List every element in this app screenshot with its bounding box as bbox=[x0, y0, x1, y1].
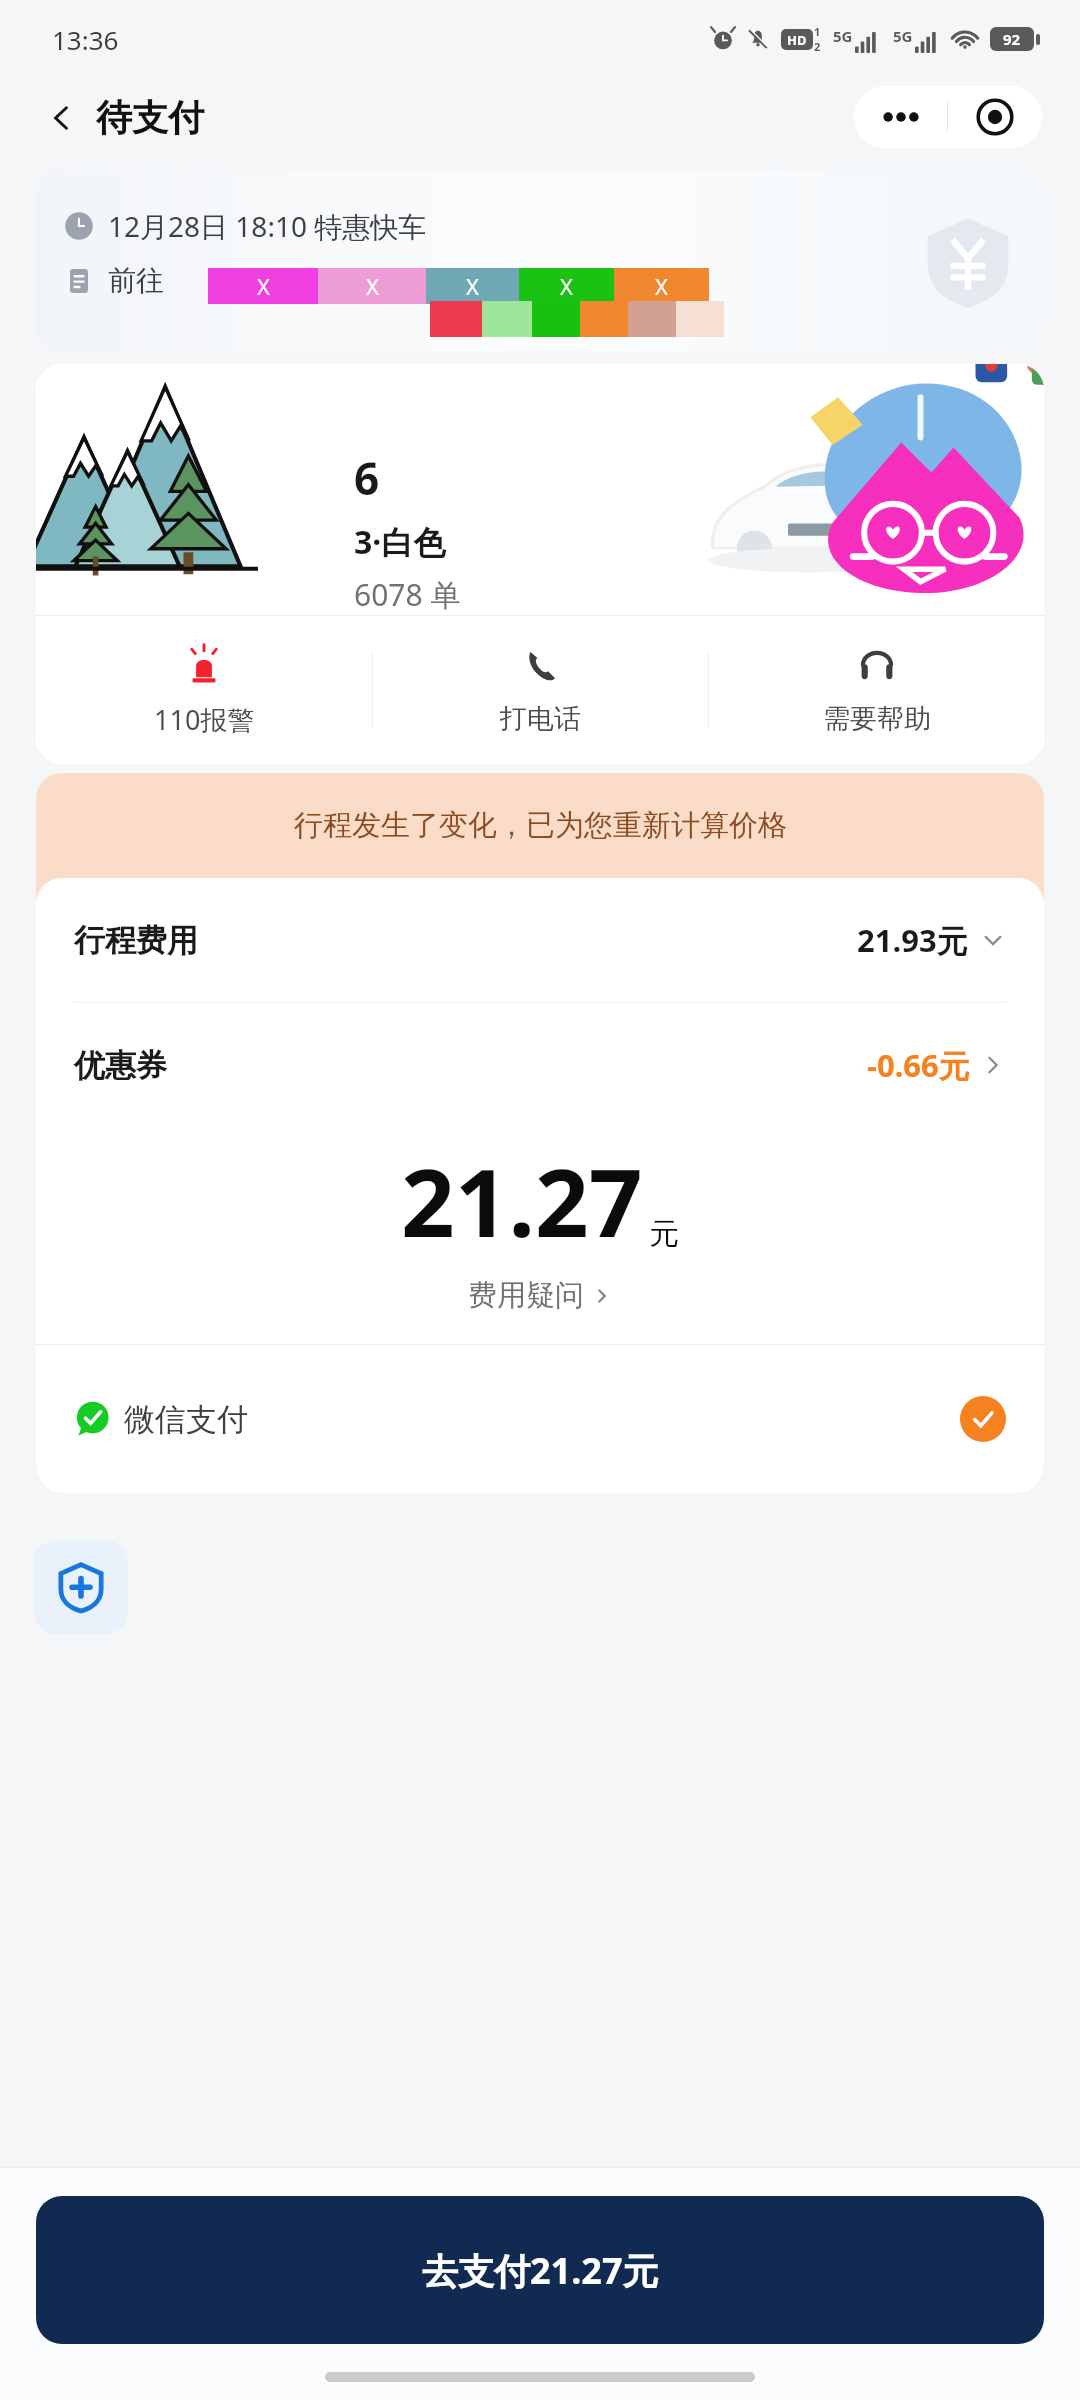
staticText: 12月28日 18:10 特惠快车 bbox=[108, 207, 427, 245]
other: Back bbox=[44, 101, 78, 135]
staticText: 1 bbox=[814, 24, 821, 39]
staticText: 6078 单 bbox=[354, 574, 461, 615]
staticText: -0.66元 bbox=[867, 1044, 970, 1086]
staticText: 13:36 bbox=[52, 22, 119, 57]
button[interactable]: 行程费用 bbox=[36, 878, 1044, 1002]
staticText: X bbox=[366, 271, 379, 301]
staticText: X bbox=[560, 271, 573, 301]
staticText: 费用疑问 bbox=[468, 1277, 584, 1314]
button[interactable]: Back bbox=[44, 95, 204, 140]
staticText: X bbox=[466, 271, 479, 301]
staticText: 110报警 bbox=[154, 701, 255, 738]
button[interactable]: 打电话 bbox=[373, 616, 708, 764]
staticText: 微信支付 bbox=[124, 1400, 248, 1439]
staticText: 需要帮助 bbox=[823, 702, 931, 736]
button[interactable]: Safety center bbox=[34, 1540, 128, 1634]
staticText: 92 bbox=[1003, 29, 1021, 49]
button[interactable]: 优惠券 bbox=[36, 1003, 1044, 1127]
button[interactable]: 微信支付 bbox=[36, 1345, 1044, 1493]
button[interactable]: More options bbox=[854, 86, 947, 148]
button[interactable]: 去支付21.27元 bbox=[36, 2196, 1044, 2344]
staticText: 打电话 bbox=[500, 702, 581, 736]
staticText: X bbox=[257, 271, 270, 301]
staticText: 2 bbox=[814, 39, 821, 54]
staticText: HD bbox=[787, 31, 807, 49]
staticText: 3·白色 bbox=[354, 520, 446, 564]
staticText: 21.27 bbox=[401, 1137, 643, 1265]
staticText: 元 bbox=[649, 1215, 679, 1253]
staticText: 行程发生了变化，已为您重新计算价格 bbox=[294, 807, 787, 844]
staticText: 21.93元 bbox=[857, 919, 968, 961]
staticText: 优惠券 bbox=[74, 1046, 167, 1085]
button[interactable]: 12月28日 18:10 特惠快车 bbox=[36, 171, 1044, 351]
staticText: 6 bbox=[354, 448, 380, 508]
staticText: 5G bbox=[833, 26, 853, 46]
staticText: 行程费用 bbox=[74, 921, 198, 960]
button[interactable]: Locate bbox=[948, 86, 1042, 148]
staticText: 待支付 bbox=[96, 95, 204, 140]
button[interactable]: 110报警 bbox=[36, 616, 372, 764]
button[interactable]: 需要帮助 bbox=[709, 616, 1044, 764]
staticText: 5G bbox=[893, 26, 913, 46]
staticText: X bbox=[655, 271, 668, 301]
staticText: 去支付21.27元 bbox=[422, 2246, 659, 2295]
staticText: 前往 bbox=[108, 263, 164, 298]
button[interactable]: 费用疑问 bbox=[36, 1265, 1044, 1344]
